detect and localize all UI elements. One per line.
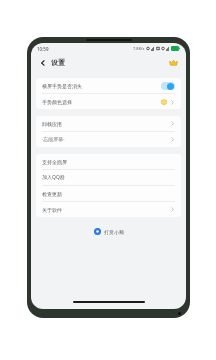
button[interactable]: 横屏手势是否消失 xyxy=(36,78,181,93)
staticText: 卸载应用 xyxy=(42,121,62,127)
button[interactable]: 手势颜色选择 xyxy=(36,94,181,109)
staticText: 设置 xyxy=(51,58,65,67)
button[interactable]: 打赏小额 xyxy=(31,225,186,238)
button[interactable]: 加入QQ群 xyxy=(36,170,181,185)
staticText: 加入QQ群 xyxy=(42,174,65,181)
button[interactable]: 支持全面屏 xyxy=(36,154,181,169)
staticText: 打赏小额 xyxy=(104,229,124,235)
staticText: 关于软件 xyxy=(42,207,62,213)
button[interactable]: 关于软件 xyxy=(36,202,181,217)
staticText: 检查更新 xyxy=(42,191,62,197)
button[interactable]: Back xyxy=(37,57,49,69)
button[interactable]: Toggle xyxy=(161,82,175,90)
staticText: ·忘能屏幕· xyxy=(42,136,65,143)
button[interactable]: 卸载应用 xyxy=(36,116,181,131)
staticText: 手势颜色选择 xyxy=(42,99,72,105)
staticText: 横屏手势是否消失 xyxy=(42,83,82,89)
staticText: 支持全面屏 xyxy=(42,159,67,165)
button[interactable]: ·忘能屏幕· xyxy=(36,132,181,147)
button[interactable]: 检查更新 xyxy=(36,186,181,201)
staticText: 7.8K/s xyxy=(133,46,145,51)
staticText: 10:59 xyxy=(37,46,49,52)
button[interactable]: Premium xyxy=(167,56,180,69)
